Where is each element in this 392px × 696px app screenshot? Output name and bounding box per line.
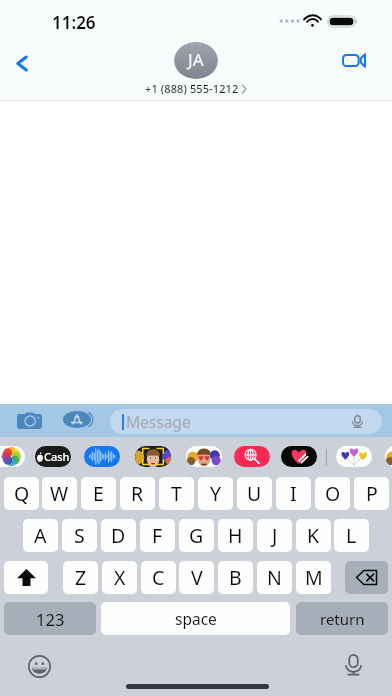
button[interactable]: A bbox=[23, 519, 58, 552]
button[interactable]: Z bbox=[63, 561, 98, 594]
button[interactable]: Apple Cash bbox=[35, 446, 71, 467]
staticText: W bbox=[50, 480, 69, 507]
staticText: return bbox=[320, 609, 365, 629]
button[interactable]: D bbox=[101, 519, 136, 552]
staticText: S bbox=[74, 522, 85, 549]
button[interactable]: W bbox=[42, 477, 77, 510]
button[interactable]: Shift bbox=[4, 561, 48, 594]
button[interactable]: X bbox=[102, 561, 137, 594]
button[interactable]: Stickers bbox=[186, 446, 222, 467]
staticText: 123 bbox=[36, 608, 65, 630]
staticText: space bbox=[175, 608, 217, 629]
button[interactable]: Back bbox=[0, 42, 43, 85]
button[interactable]: V bbox=[179, 561, 214, 594]
staticText: O bbox=[325, 480, 341, 507]
button[interactable]: Camera bbox=[17, 412, 42, 429]
button[interactable]: Dictation bbox=[341, 653, 365, 677]
button[interactable]: K bbox=[296, 519, 331, 552]
button[interactable]: R bbox=[120, 477, 155, 510]
staticText: Y bbox=[210, 480, 222, 507]
staticText: L bbox=[346, 522, 357, 549]
staticText: G bbox=[189, 522, 204, 549]
staticText: P bbox=[366, 480, 378, 507]
staticText: H bbox=[228, 522, 243, 549]
button[interactable]: Y bbox=[198, 477, 233, 510]
button[interactable]: Digital Touch bbox=[281, 446, 317, 467]
button[interactable]: return bbox=[296, 602, 388, 635]
button[interactable]: Emoji keyboard bbox=[27, 654, 51, 678]
staticText: 11:26 bbox=[52, 11, 96, 34]
button[interactable]: J bbox=[257, 519, 292, 552]
button[interactable]: 123 bbox=[4, 602, 96, 635]
staticText: JA bbox=[188, 48, 204, 71]
staticText: F bbox=[152, 522, 163, 549]
button[interactable]: Balloons bbox=[336, 446, 372, 467]
button[interactable]: B bbox=[218, 561, 253, 594]
staticText: C bbox=[152, 564, 165, 591]
button[interactable]: Apps bbox=[63, 411, 94, 428]
staticText: E bbox=[93, 480, 104, 507]
button[interactable]: Message bbox=[110, 409, 382, 434]
staticText: Q bbox=[14, 480, 30, 507]
staticText: T bbox=[171, 480, 182, 507]
button[interactable]: F bbox=[140, 519, 175, 552]
staticText: R bbox=[131, 480, 144, 507]
button[interactable]: FaceTime video call bbox=[332, 38, 376, 82]
staticText: +1 (888) 555-1212 bbox=[145, 81, 239, 96]
staticText: K bbox=[307, 522, 320, 549]
staticText: N bbox=[267, 564, 282, 591]
staticText: D bbox=[111, 522, 126, 549]
button[interactable]: Q bbox=[4, 477, 39, 510]
button[interactable]: P bbox=[354, 477, 389, 510]
button[interactable]: U bbox=[237, 477, 272, 510]
staticText: X bbox=[114, 564, 126, 591]
button[interactable]: Photos bbox=[0, 446, 25, 467]
button[interactable]: C bbox=[141, 561, 176, 594]
button[interactable]: E bbox=[81, 477, 116, 510]
button[interactable]: I bbox=[276, 477, 311, 510]
button[interactable]: G bbox=[179, 519, 214, 552]
button[interactable]: H bbox=[218, 519, 253, 552]
staticText: I bbox=[290, 480, 297, 507]
staticText: J bbox=[272, 522, 278, 549]
staticText: Cash bbox=[44, 449, 70, 464]
staticText: U bbox=[247, 480, 262, 507]
button[interactable]: Memoji bbox=[135, 446, 171, 467]
button[interactable]: T bbox=[159, 477, 194, 510]
staticText: B bbox=[229, 564, 242, 591]
staticText: A bbox=[34, 522, 47, 549]
button[interactable]: S bbox=[62, 519, 97, 552]
staticText: Z bbox=[75, 564, 87, 591]
button[interactable]: Images bbox=[234, 446, 270, 467]
button[interactable]: space bbox=[101, 602, 290, 635]
button[interactable]: O bbox=[315, 477, 350, 510]
staticText: Message bbox=[126, 411, 191, 432]
staticText: M bbox=[305, 564, 323, 591]
button[interactable]: L bbox=[334, 519, 369, 552]
button[interactable]: N bbox=[257, 561, 292, 594]
staticText: V bbox=[191, 564, 203, 591]
button[interactable]: Backspace bbox=[345, 561, 388, 594]
button[interactable]: JA bbox=[145, 42, 246, 96]
button[interactable]: Audio message bbox=[84, 446, 120, 467]
button[interactable]: More apps bbox=[385, 446, 392, 467]
button[interactable]: M bbox=[296, 561, 331, 594]
